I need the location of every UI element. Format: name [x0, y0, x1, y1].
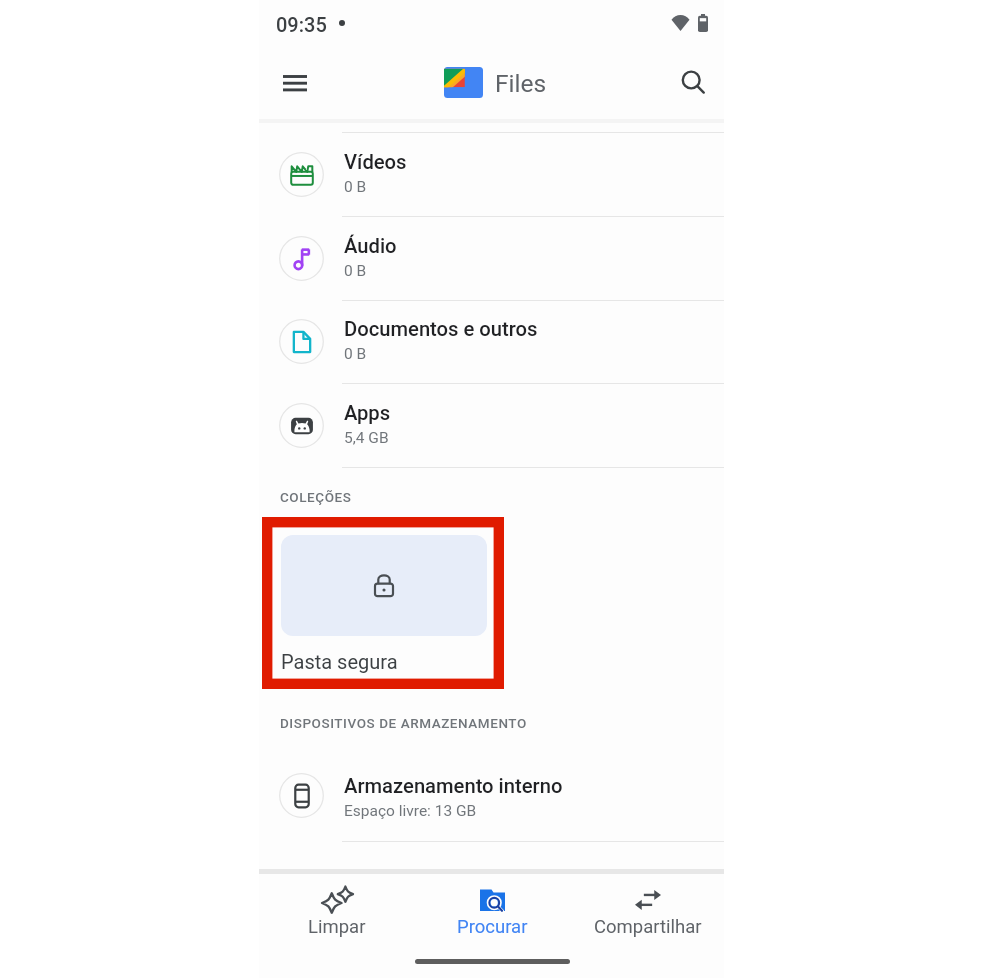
staticText: 0 B — [344, 345, 367, 363]
button[interactable]: Documentos e outros — [259, 300, 724, 383]
staticText: Vídeos — [344, 150, 407, 174]
staticText: Documentos e outros — [344, 317, 538, 341]
button[interactable]: Search — [666, 55, 714, 103]
staticText: Procurar — [457, 916, 528, 938]
staticText: Compartilhar — [594, 916, 702, 938]
staticText: Files — [495, 69, 547, 98]
button[interactable]: Pasta segura — [281, 535, 487, 673]
staticText: 5,4 GB — [344, 429, 389, 447]
staticText: 0 B — [344, 178, 367, 196]
staticText: 09:35 — [276, 13, 327, 36]
button[interactable]: Limpar — [263, 876, 411, 942]
button[interactable]: Apps — [259, 383, 724, 467]
staticText: Limpar — [308, 916, 366, 938]
staticText: DISPOSITIVOS DE ARMAZENAMENTO — [280, 715, 527, 731]
button[interactable]: Compartilhar — [574, 876, 722, 942]
button[interactable]: Áudio — [259, 216, 724, 300]
button[interactable]: Open navigation menu — [259, 59, 307, 107]
button[interactable]: Armazenamento interno — [259, 756, 724, 840]
staticText: COLEÇÕES — [280, 489, 352, 505]
staticText: Áudio — [344, 234, 397, 258]
staticText: Apps — [344, 401, 391, 425]
staticText: 0 B — [344, 262, 367, 280]
button[interactable]: Procurar — [418, 876, 566, 942]
staticText: Pasta segura — [281, 650, 398, 673]
button[interactable]: Vídeos — [259, 132, 724, 216]
staticText: Armazenamento interno — [344, 774, 563, 798]
staticText: Espaço livre: 13 GB — [344, 802, 477, 820]
